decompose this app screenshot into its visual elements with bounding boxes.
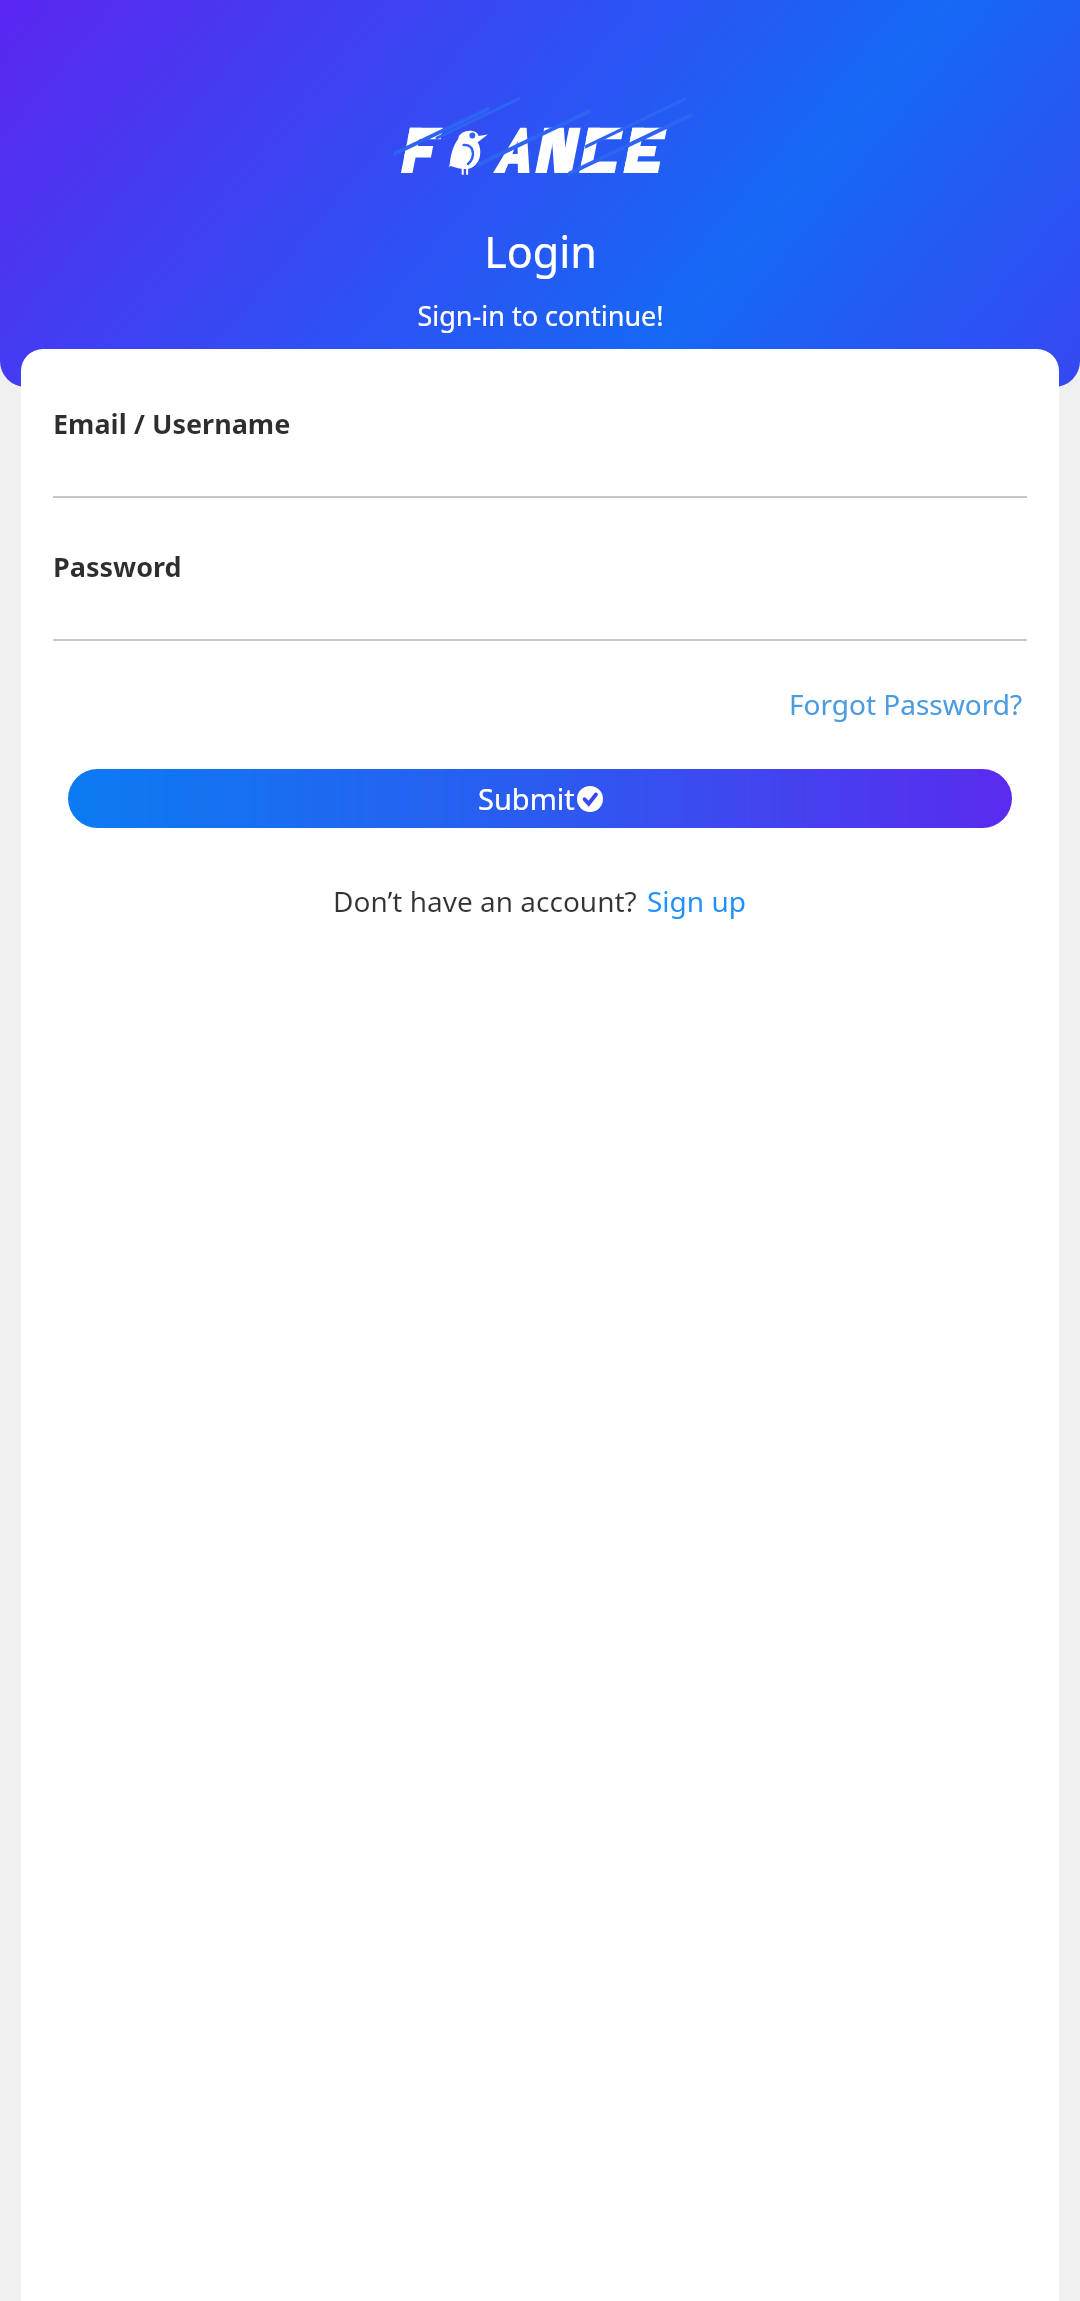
staticText: Password xyxy=(53,548,182,585)
staticText: Sign up xyxy=(647,882,746,920)
button[interactable]: Submit xyxy=(68,769,1012,828)
staticText: Login xyxy=(484,222,597,281)
staticText: Email / Username xyxy=(53,405,291,442)
button[interactable]: Forgot Password? xyxy=(785,677,1027,731)
staticText: Forgot Password? xyxy=(789,685,1023,723)
staticText: Submit xyxy=(478,779,575,818)
staticText: Don’t have an account? xyxy=(333,882,637,920)
button[interactable]: Sign up xyxy=(645,876,748,926)
staticText: Sign-in to continue! xyxy=(417,297,664,334)
